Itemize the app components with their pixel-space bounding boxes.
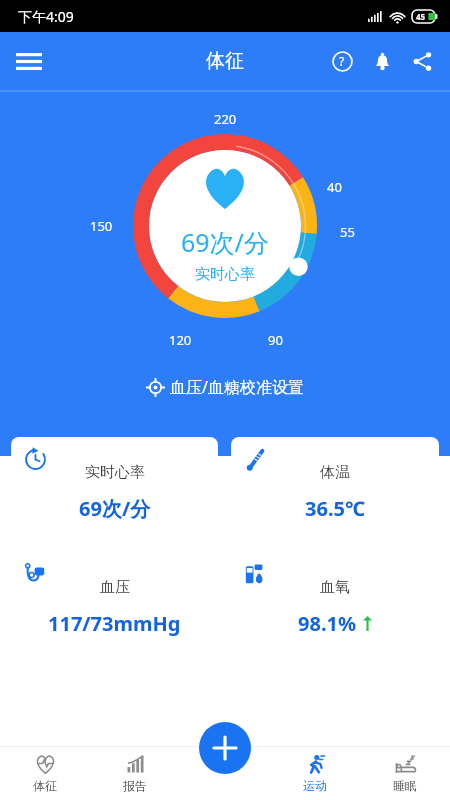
button[interactable]: 体温 <box>231 437 439 541</box>
staticText: 血压/血糖校准设置 <box>170 376 304 398</box>
staticText: 150 <box>90 217 113 235</box>
button[interactable]: Menu <box>6 38 52 84</box>
staticText: 下午4:09 <box>18 7 74 26</box>
button[interactable]: 体征 <box>0 746 90 800</box>
staticText: 55 <box>340 223 355 241</box>
button[interactable]: Add <box>199 722 251 774</box>
button[interactable]: 报告 <box>90 746 180 800</box>
staticText: 血压 <box>100 578 130 597</box>
staticText: 实时心率 <box>85 463 145 482</box>
staticText: 117/73mmHg <box>48 610 181 637</box>
staticText: 实时心率 <box>195 265 255 284</box>
staticText: 运动 <box>303 778 327 793</box>
staticText: 69次/分 <box>79 495 151 522</box>
staticText: 45 <box>416 11 426 22</box>
staticText: 体征 <box>33 778 57 793</box>
staticText: 69次/分 <box>181 225 269 259</box>
staticText: 98.1% <box>298 610 356 637</box>
button[interactable]: 睡眠 <box>360 746 450 800</box>
button[interactable]: 运动 <box>270 746 360 800</box>
staticText: 体温 <box>320 463 350 482</box>
staticText: 220 <box>214 110 237 128</box>
staticText: 报告 <box>123 778 147 793</box>
staticText: 睡眠 <box>393 778 417 793</box>
staticText: 40 <box>327 178 342 196</box>
staticText: 36.5℃ <box>305 495 366 522</box>
button[interactable]: Help <box>322 41 362 81</box>
button[interactable]: 血压 <box>11 552 218 656</box>
button[interactable]: Notifications <box>362 41 402 81</box>
button[interactable]: Share <box>402 41 442 81</box>
button[interactable]: 实时心率 <box>11 437 218 541</box>
staticText: ? <box>339 53 345 69</box>
button[interactable]: 血氧 <box>231 552 439 656</box>
staticText: 120 <box>169 331 192 349</box>
button[interactable]: 血压/血糖校准设置 <box>136 371 314 403</box>
staticText: 体征 <box>206 49 244 73</box>
staticText: 90 <box>268 331 283 349</box>
staticText: 血氧 <box>320 578 350 597</box>
